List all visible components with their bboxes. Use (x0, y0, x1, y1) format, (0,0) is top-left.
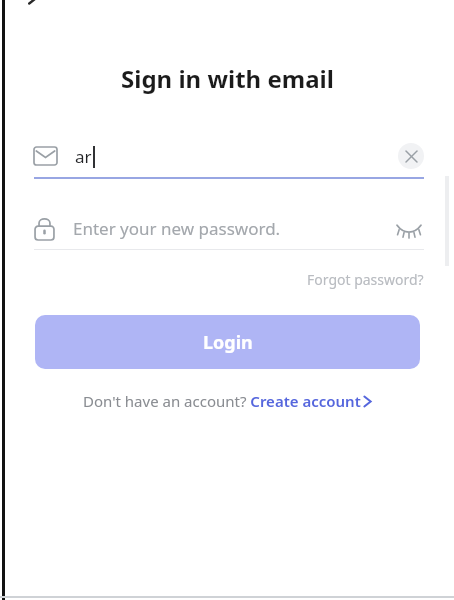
staticText: Don't have an account? Create account (83, 391, 361, 411)
staticText: Login (203, 330, 253, 355)
button[interactable]: ar (34, 135, 424, 177)
staticText: ar (75, 145, 92, 168)
button[interactable]: Show password (394, 213, 424, 243)
button[interactable]: Back (26, 0, 44, 10)
button[interactable]: Clear email (398, 143, 424, 169)
button[interactable]: Forgot password? (307, 270, 424, 289)
staticText: Sign in with email (121, 62, 334, 95)
staticText: Enter your new password. (73, 217, 281, 240)
staticText: Forgot password? (307, 270, 424, 289)
button[interactable]: Enter your new password. (34, 207, 424, 249)
button[interactable]: Don't have an account? Create account (83, 391, 372, 411)
button[interactable]: Login (35, 315, 420, 369)
